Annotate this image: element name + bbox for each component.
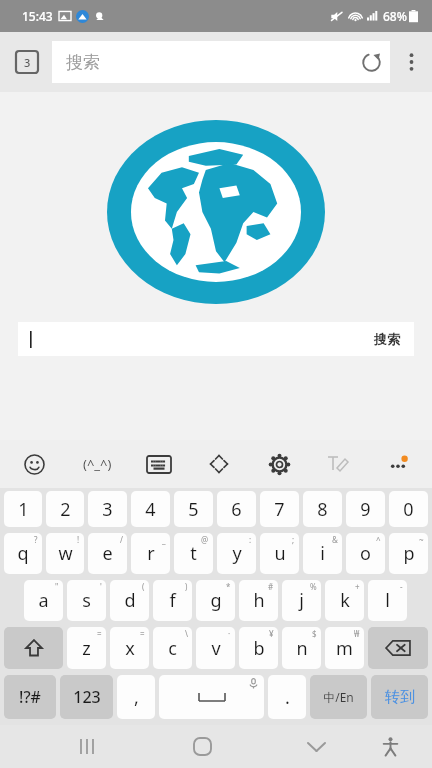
staticText: @ xyxy=(201,534,209,545)
button[interactable]: Shift xyxy=(4,627,63,669)
button[interactable]: r xyxy=(131,533,170,574)
staticText: ? xyxy=(34,534,38,545)
button[interactable]: g xyxy=(196,580,235,621)
button[interactable]: Hide keyboard xyxy=(293,725,339,768)
button[interactable]: 0 xyxy=(389,491,428,527)
staticText: ; xyxy=(292,534,295,545)
button[interactable]: k xyxy=(325,580,364,621)
button[interactable]: h xyxy=(239,580,278,621)
staticText: $ xyxy=(312,628,317,639)
button[interactable]: 1 xyxy=(4,491,42,527)
button[interactable]: 搜索 xyxy=(18,322,414,356)
button[interactable]: More keyboard options xyxy=(378,444,418,484)
button[interactable]: Recent apps xyxy=(65,725,111,768)
button[interactable]: Settings xyxy=(259,444,299,484)
staticText: f xyxy=(169,588,176,613)
staticText: : xyxy=(249,534,252,545)
staticText: , xyxy=(134,685,139,710)
staticText: k xyxy=(340,588,350,613)
staticText: 123 xyxy=(73,686,101,708)
staticText: · xyxy=(228,628,231,639)
button[interactable]: !?# xyxy=(4,675,56,719)
staticText: - xyxy=(400,581,403,592)
staticText: 9 xyxy=(360,497,371,522)
button[interactable]: 3 xyxy=(88,491,127,527)
button[interactable]: a xyxy=(24,580,63,621)
button[interactable]: Accessibility xyxy=(367,725,413,768)
staticText: 搜索 xyxy=(374,331,400,347)
button[interactable]: . xyxy=(268,675,306,719)
button[interactable]: Handwriting xyxy=(318,444,358,484)
staticText: u xyxy=(274,541,286,566)
button[interactable]: Keyboard layout xyxy=(139,444,179,484)
staticText: + xyxy=(355,581,360,592)
button[interactable]: (^_^) xyxy=(74,441,120,487)
staticText: ( xyxy=(142,581,145,592)
button[interactable]: Tabs, 3 open xyxy=(12,47,42,77)
button[interactable]: , xyxy=(117,675,155,719)
staticText: ! xyxy=(77,534,80,545)
button[interactable]: 转到 xyxy=(371,675,428,719)
staticText: ' xyxy=(100,581,102,592)
staticText: !?# xyxy=(19,686,41,708)
button[interactable]: Emoji xyxy=(14,444,54,484)
staticText: ^ xyxy=(376,534,381,545)
button[interactable]: Space xyxy=(159,675,264,719)
button[interactable]: j xyxy=(282,580,321,621)
button[interactable]: n xyxy=(282,627,321,669)
button[interactable]: u xyxy=(260,533,299,574)
button[interactable]: 9 xyxy=(346,491,385,527)
button[interactable]: f xyxy=(153,580,192,621)
button[interactable]: z xyxy=(67,627,106,669)
button[interactable]: v xyxy=(196,627,235,669)
button[interactable]: m xyxy=(325,627,364,669)
staticText: 3 xyxy=(102,497,113,522)
staticText: 3 xyxy=(24,55,31,70)
staticText: _ xyxy=(162,534,166,545)
button[interactable]: w xyxy=(46,533,84,574)
button[interactable]: 中/En xyxy=(310,675,367,719)
button[interactable]: 6 xyxy=(217,491,256,527)
button[interactable]: d xyxy=(110,580,149,621)
staticText: / xyxy=(120,534,123,545)
button[interactable]: t xyxy=(174,533,213,574)
staticText: ) xyxy=(185,581,188,592)
button[interactable]: i xyxy=(303,533,342,574)
button[interactable]: s xyxy=(67,580,106,621)
button[interactable]: 2 xyxy=(46,491,84,527)
staticText: 0 xyxy=(403,497,414,522)
staticText: & xyxy=(332,534,338,545)
button[interactable]: 123 xyxy=(60,675,113,719)
button[interactable]: 5 xyxy=(174,491,213,527)
button[interactable]: q xyxy=(4,533,42,574)
button[interactable]: Reload xyxy=(352,43,390,81)
button[interactable]: Backspace xyxy=(368,627,428,669)
button[interactable]: More options xyxy=(390,32,432,92)
button[interactable]: l xyxy=(368,580,407,621)
staticText: r xyxy=(147,541,155,566)
button[interactable]: x xyxy=(110,627,149,669)
button[interactable]: e xyxy=(88,533,127,574)
button[interactable]: o xyxy=(346,533,385,574)
staticText: ~ xyxy=(419,534,424,545)
staticText: = xyxy=(97,628,102,639)
staticText: 15:43 xyxy=(22,8,53,24)
button[interactable]: Home xyxy=(179,725,225,768)
staticText: 7 xyxy=(274,497,285,522)
button[interactable]: 搜索 xyxy=(52,41,390,83)
button[interactable]: c xyxy=(153,627,192,669)
staticText: " xyxy=(55,581,59,592)
staticText: y xyxy=(232,541,242,566)
button[interactable]: y xyxy=(217,533,256,574)
staticText: p xyxy=(403,541,415,566)
button[interactable]: 7 xyxy=(260,491,299,527)
button[interactable]: 8 xyxy=(303,491,342,527)
staticText: t xyxy=(190,541,197,566)
staticText: 中/En xyxy=(323,689,354,705)
staticText: a xyxy=(38,588,49,613)
button[interactable]: b xyxy=(239,627,278,669)
button[interactable]: 4 xyxy=(131,491,170,527)
button[interactable]: Move keyboard xyxy=(199,444,239,484)
staticText: c xyxy=(168,636,177,661)
button[interactable]: p xyxy=(389,533,428,574)
